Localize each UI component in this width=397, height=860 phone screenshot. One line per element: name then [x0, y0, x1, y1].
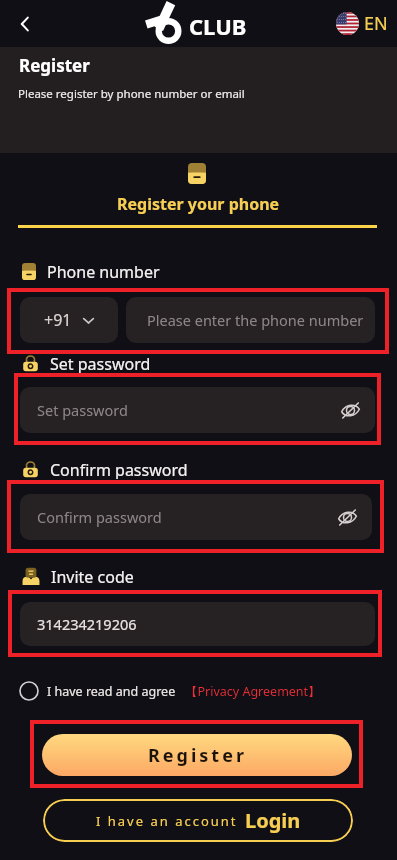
button[interactable]: +91 [20, 297, 118, 343]
button[interactable]: Back [6, 5, 44, 43]
staticText: I have an account [96, 812, 238, 830]
staticText: Set password [37, 400, 128, 420]
staticText: +91 [44, 309, 72, 331]
button[interactable]: 【Privacy Agreement】 [185, 683, 321, 700]
button[interactable]: EN [336, 11, 388, 36]
staticText: Please register by phone number or email [18, 86, 245, 102]
staticText: Confirm password [37, 507, 162, 527]
button[interactable]: I have an account [43, 799, 353, 842]
staticText: Login [245, 807, 301, 834]
staticText: Set password [50, 353, 151, 373]
button[interactable]: Register [42, 734, 352, 776]
button[interactable]: Set password [20, 387, 375, 433]
button[interactable]: Show password [338, 398, 362, 422]
staticText: Confirm password [50, 459, 188, 479]
button[interactable]: Please enter the phone number [126, 297, 375, 343]
button[interactable]: 314234219206 [20, 602, 375, 646]
button[interactable]: Confirm password [20, 494, 372, 540]
button[interactable]: Show password [335, 505, 359, 529]
staticText: 314234219206 [37, 614, 137, 634]
button[interactable]: Agree to privacy agreement [19, 681, 39, 701]
staticText: Register your phone [117, 193, 280, 215]
staticText: Register [148, 743, 247, 768]
staticText: Invite code [51, 566, 134, 586]
staticText: Please enter the phone number [147, 310, 364, 330]
staticText: 【Privacy Agreement】 [185, 683, 321, 700]
staticText: Phone number [47, 261, 160, 281]
staticText: Register [19, 54, 90, 77]
staticText: I have read and agree [47, 683, 176, 700]
staticText: EN [364, 11, 388, 36]
staticText: CLUB [189, 11, 247, 41]
